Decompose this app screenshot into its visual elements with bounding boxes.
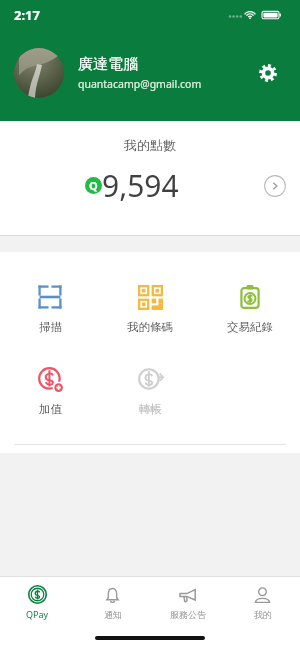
- button[interactable]: Points detail: [264, 175, 286, 197]
- staticText: 通知: [104, 609, 122, 620]
- staticText: 2:17: [14, 6, 40, 24]
- staticText: 服務公告: [170, 609, 206, 620]
- staticText: 我的: [254, 609, 272, 620]
- staticText: 交易紀錄: [227, 320, 273, 334]
- staticText: 9,594: [102, 165, 179, 206]
- button[interactable]: QPay: [0, 577, 75, 627]
- button[interactable]: 掃描: [0, 278, 100, 338]
- staticText: 我的點數: [124, 137, 176, 153]
- button[interactable]: 通知: [75, 577, 150, 627]
- staticText: QPay: [26, 608, 49, 620]
- staticText: 加值: [39, 402, 62, 416]
- button[interactable]: 交易紀錄: [200, 278, 300, 338]
- staticText: 掃描: [39, 320, 62, 334]
- button[interactable]: 加值: [0, 360, 100, 420]
- button[interactable]: 轉帳: [100, 360, 200, 420]
- button[interactable]: Settings: [246, 51, 290, 95]
- staticText: Q: [89, 178, 98, 193]
- button[interactable]: 我的條碼: [100, 278, 200, 338]
- staticText: 轉帳: [139, 402, 162, 416]
- button[interactable]: 服務公告: [150, 577, 225, 627]
- button[interactable]: 我的: [225, 577, 300, 627]
- staticText: 廣達電腦: [78, 55, 138, 74]
- button[interactable]: Profile photo: [14, 48, 64, 98]
- staticText: quantacamp@gmail.com: [78, 77, 202, 91]
- staticText: 我的條碼: [127, 320, 173, 334]
